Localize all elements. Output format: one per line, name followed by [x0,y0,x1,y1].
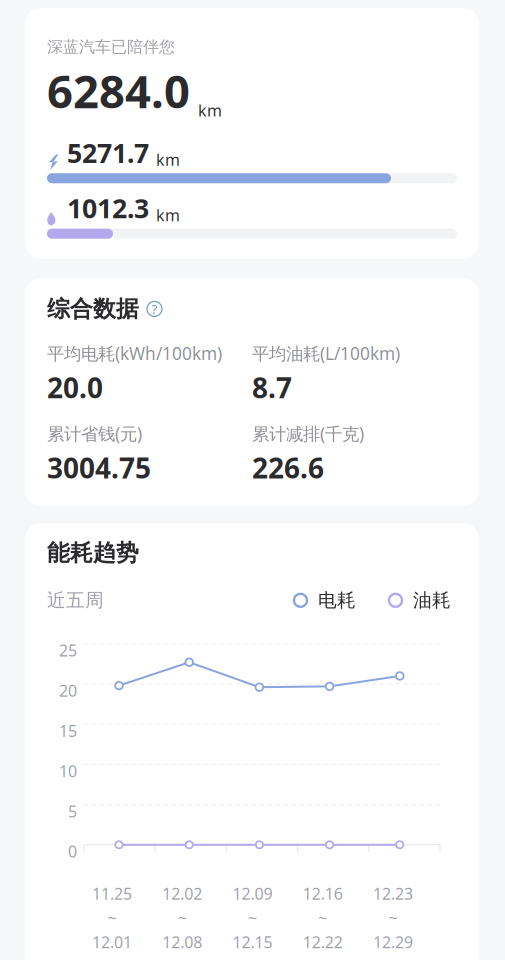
staticText: km [156,204,180,226]
staticText: 1012.3 [67,190,149,226]
staticText: 5271.7 [67,135,149,170]
staticText: 12.08 [162,931,202,953]
staticText: 0 [68,841,77,862]
staticText: 6284.0 [47,61,190,121]
staticText: 11.25 [92,883,132,904]
staticText: 12.15 [232,931,272,953]
staticText: 近五周 [47,589,104,612]
staticText: 平均油耗(L/100km) [252,342,400,365]
staticText: 5 [68,801,77,822]
staticText: 综合数据 [47,295,139,323]
staticText: ~ [388,907,397,928]
staticText: 8.7 [252,369,292,406]
staticText: ~ [108,907,117,928]
staticText: ~ [178,907,187,928]
staticText: 12.22 [303,931,343,953]
staticText: 25 [59,640,77,661]
staticText: 12.09 [232,883,272,904]
staticText: ~ [318,907,327,928]
staticText: 累计省钱(元) [47,422,142,445]
staticText: 油耗 [413,589,451,612]
staticText: 12.16 [303,883,343,904]
staticText: ? [151,300,157,318]
staticText: 累计减排(千克) [252,422,364,445]
staticText: 20 [59,680,77,701]
staticText: 能耗趋势 [47,539,139,567]
staticText: km [156,149,180,170]
staticText: 3004.75 [47,449,151,486]
button[interactable]: 关于综合数据 [146,300,163,317]
staticText: 深蓝汽车已陪伴您 [47,37,175,57]
staticText: 平均电耗(kWh/100km) [47,342,222,365]
staticText: 电耗 [318,589,356,612]
staticText: 20.0 [47,369,103,406]
staticText: km [198,100,222,121]
staticText: 12.23 [373,883,413,904]
staticText: 15 [59,720,77,741]
staticText: ~ [248,907,257,928]
staticText: 10 [59,760,77,782]
staticText: 12.29 [373,931,413,953]
staticText: 12.01 [92,931,132,953]
staticText: 12.02 [162,883,202,904]
staticText: 226.6 [252,449,324,486]
